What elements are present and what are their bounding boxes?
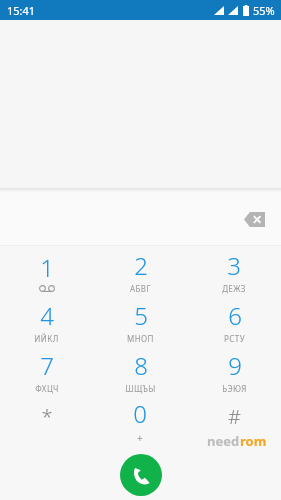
staticText: ДЕЖЗ: [222, 283, 246, 294]
staticText: 1: [40, 251, 54, 284]
staticText: ЬЭЮЯ: [222, 383, 247, 394]
staticText: +: [137, 431, 143, 445]
staticText: АБВГ: [130, 283, 151, 294]
staticText: 5: [134, 299, 148, 332]
button[interactable]: 1: [0, 246, 93, 296]
staticText: ИЙКЛ: [34, 333, 59, 344]
staticText: РСТУ: [224, 333, 245, 344]
button[interactable]: Call: [120, 454, 162, 496]
staticText: rom: [240, 432, 267, 450]
staticText: 7: [40, 349, 54, 382]
staticText: 8: [134, 349, 148, 382]
staticText: 2: [134, 249, 148, 282]
button[interactable]: 8: [93, 346, 187, 396]
button[interactable]: *: [0, 396, 93, 446]
staticText: 4: [40, 299, 54, 332]
button[interactable]: 9: [187, 346, 281, 396]
button[interactable]: Backspace: [237, 202, 271, 236]
button[interactable]: 3: [187, 246, 281, 296]
staticText: 55%: [253, 3, 275, 18]
button[interactable]: 5: [93, 296, 187, 346]
staticText: ФХЦЧ: [35, 383, 59, 394]
staticText: need: [207, 432, 240, 450]
staticText: 15:41: [7, 3, 36, 18]
staticText: #: [228, 403, 241, 430]
button[interactable]: 0: [93, 396, 187, 446]
staticText: ШЩЪЫ: [125, 383, 156, 394]
staticText: *: [41, 403, 53, 430]
staticText: 0: [133, 397, 147, 430]
button[interactable]: 4: [0, 296, 93, 346]
staticText: 9: [228, 349, 242, 382]
staticText: 6: [228, 299, 242, 332]
staticText: МНОП: [127, 333, 154, 344]
staticText: 3: [227, 249, 241, 282]
button[interactable]: 6: [187, 296, 281, 346]
button[interactable]: #: [187, 396, 281, 446]
button[interactable]: 2: [93, 246, 187, 296]
button[interactable]: 7: [0, 346, 93, 396]
